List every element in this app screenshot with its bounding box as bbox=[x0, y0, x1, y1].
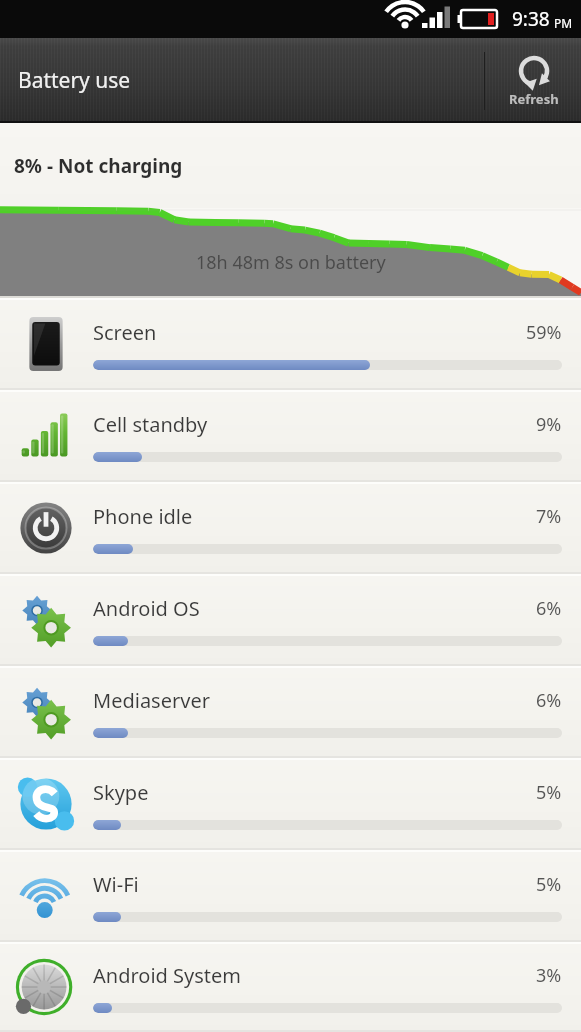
staticText: 7% bbox=[536, 504, 562, 529]
button[interactable]: Refresh bbox=[487, 38, 581, 123]
button[interactable]: Android System bbox=[0, 942, 581, 1032]
staticText: Cell standby bbox=[93, 411, 536, 438]
button[interactable]: Phone idle bbox=[0, 482, 581, 574]
staticText: 6% bbox=[536, 688, 562, 713]
button[interactable]: Mediaserver bbox=[0, 666, 581, 758]
button[interactable]: Cell standby bbox=[0, 390, 581, 482]
staticText: 6% bbox=[536, 596, 562, 621]
staticText: Wi-Fi bbox=[93, 871, 536, 898]
staticText: 8% - Not charging bbox=[14, 153, 183, 179]
button[interactable]: Screen bbox=[0, 298, 581, 390]
staticText: PM bbox=[554, 15, 573, 31]
staticText: Mediaserver bbox=[93, 687, 536, 714]
button[interactable]: Wi-Fi bbox=[0, 850, 581, 942]
staticText: 3% bbox=[536, 963, 562, 988]
button[interactable]: Skype bbox=[0, 758, 581, 850]
staticText: Android System bbox=[93, 962, 536, 989]
staticText: Skype bbox=[93, 779, 536, 806]
staticText: Battery use bbox=[18, 66, 131, 95]
staticText: 18h 48m 8s on battery bbox=[196, 250, 386, 275]
staticText: 5% bbox=[536, 872, 562, 897]
staticText: 5% bbox=[536, 780, 562, 805]
staticText: Screen bbox=[93, 319, 526, 346]
button[interactable]: Android OS bbox=[0, 574, 581, 666]
staticText: Refresh bbox=[509, 90, 559, 108]
staticText: 9% bbox=[536, 412, 562, 437]
staticText: 9:38 bbox=[512, 6, 550, 32]
staticText: 59% bbox=[526, 320, 562, 345]
staticText: Phone idle bbox=[93, 503, 536, 530]
staticText: Android OS bbox=[93, 595, 536, 622]
